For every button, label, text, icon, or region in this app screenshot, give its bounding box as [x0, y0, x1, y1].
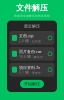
staticText: 开始解压 [24, 81, 40, 86]
staticText: 2.4 MB · 已完成 [19, 39, 41, 43]
staticText: 5.1 MB · 等待中 [19, 71, 41, 75]
staticText: 文件解压 [16, 3, 48, 13]
staticText: 项目资料.7z [19, 65, 40, 70]
button[interactable]: 照片备份.rar [9, 47, 54, 61]
button[interactable]: 项目资料.7z [9, 63, 54, 77]
staticText: 照片备份.rar [19, 49, 42, 54]
staticText: 最近解压 [24, 24, 40, 28]
button[interactable]: 文档.zip [9, 31, 54, 45]
staticText: 文档.zip [19, 33, 33, 38]
button[interactable]: 开始解压 [20, 80, 44, 88]
staticText: 18.6 MB · 解压中 [19, 55, 43, 59]
staticText: 快速安全地解压你的压缩包 [14, 14, 50, 18]
